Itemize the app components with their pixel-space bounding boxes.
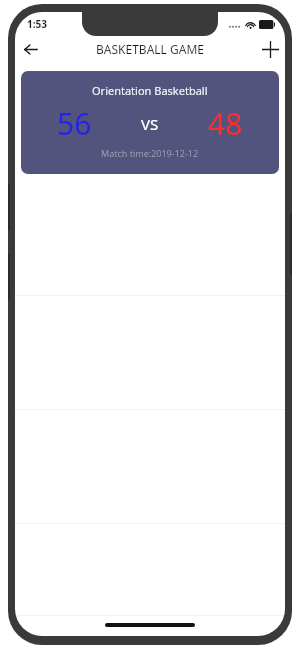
staticText: BASKETBALL GAME [96,41,204,57]
staticText: 56 [57,103,92,144]
staticText: Orientation Basketball [92,83,208,98]
staticText: 48 [208,103,243,144]
button[interactable]: Back [15,36,45,62]
staticText: 1:53 [27,17,47,31]
button[interactable]: Orientation Basketball [21,71,279,174]
staticText: Match time:2019-12-12 [101,147,199,159]
button[interactable]: Add [255,36,285,62]
staticText: VS [141,114,159,134]
